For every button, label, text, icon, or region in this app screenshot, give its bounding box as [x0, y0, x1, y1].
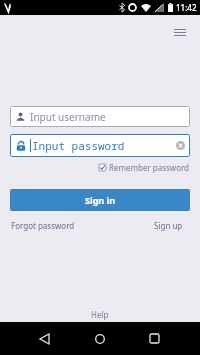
button[interactable]: Input username — [10, 106, 190, 127]
button[interactable] — [133, 322, 200, 355]
staticText: Remember password — [109, 162, 190, 173]
button[interactable]: Forgot password — [11, 220, 75, 231]
staticText: Input password — [32, 138, 125, 153]
button[interactable]: Sign in — [10, 189, 190, 211]
button[interactable] — [66, 322, 133, 355]
staticText: Sign in — [85, 194, 116, 206]
button[interactable]: Help — [91, 309, 109, 320]
button[interactable] — [0, 322, 66, 355]
staticText: Input username — [30, 110, 106, 124]
button[interactable] — [174, 29, 186, 36]
staticText: 11:42 — [176, 2, 197, 13]
button[interactable]: Remember password — [99, 162, 190, 173]
button[interactable]: Input password — [10, 134, 190, 157]
button[interactable]: Sign up — [154, 220, 183, 231]
